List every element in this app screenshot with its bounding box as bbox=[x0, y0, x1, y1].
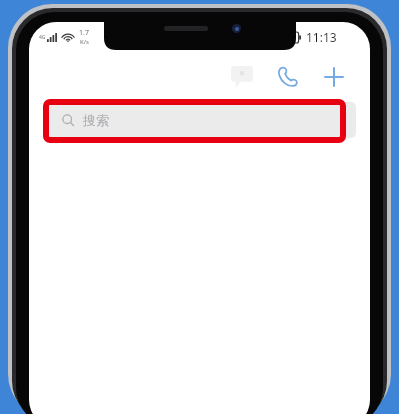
button[interactable]: 搜索 bbox=[46, 102, 356, 138]
staticText: 4G bbox=[39, 34, 46, 41]
button[interactable]: Messages bbox=[225, 60, 259, 94]
staticText: K/s bbox=[80, 38, 89, 46]
button[interactable]: Add bbox=[317, 60, 351, 94]
staticText: 搜索 bbox=[83, 112, 109, 128]
button[interactable]: Call bbox=[271, 60, 305, 94]
staticText: 11:13 bbox=[306, 29, 337, 45]
staticText: 1.7 bbox=[79, 28, 89, 38]
